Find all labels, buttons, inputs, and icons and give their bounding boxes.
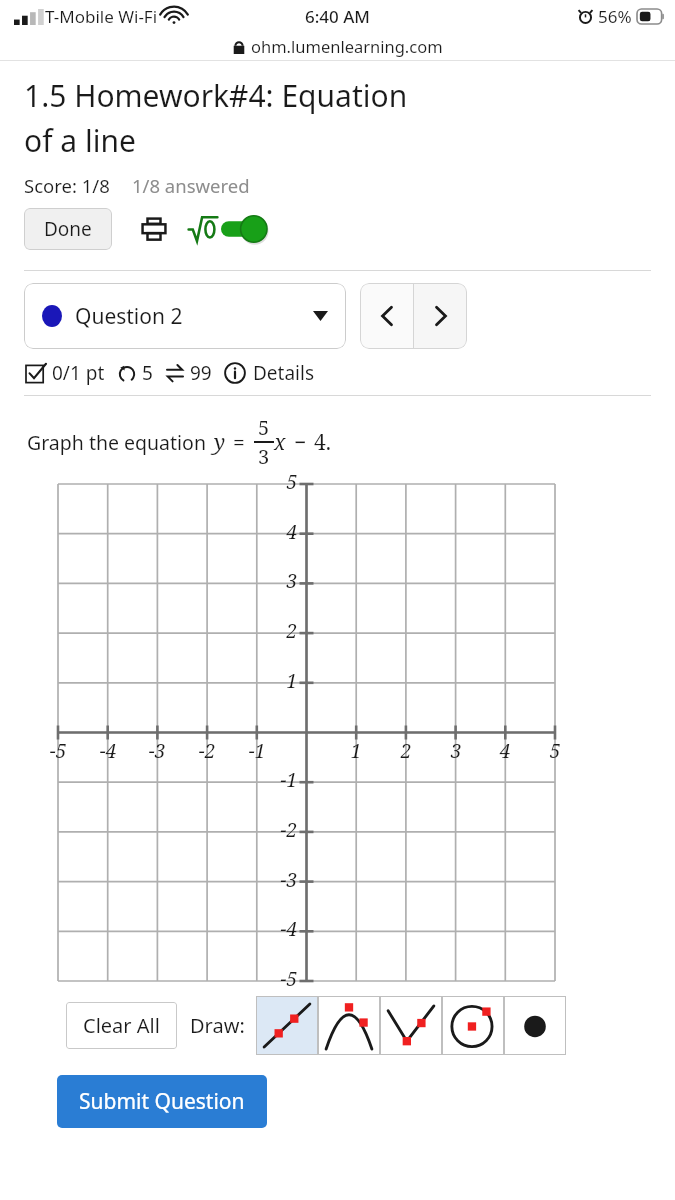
- staticText: Submit Question: [79, 1087, 245, 1116]
- staticText: -4: [88, 738, 128, 764]
- staticText: 1/8 answered: [132, 173, 250, 198]
- button[interactable]: Drawing tool: [256, 996, 318, 1055]
- staticText: =: [233, 428, 245, 457]
- button[interactable]: Details: [224, 360, 315, 386]
- button[interactable]: Print: [134, 209, 174, 249]
- button[interactable]: Previous question: [360, 283, 413, 349]
- staticText: 3: [261, 568, 297, 594]
- staticText: -2: [187, 738, 227, 764]
- button[interactable]: Submit Question: [57, 1075, 267, 1128]
- staticText: 5: [142, 360, 153, 386]
- staticText: T-Mobile Wi-Fi: [45, 5, 158, 28]
- staticText: 2: [386, 738, 426, 764]
- staticText: ohm.lumenlearning.com: [251, 35, 443, 57]
- staticText: Done: [44, 216, 92, 242]
- button[interactable]: Drawing tool: [504, 996, 566, 1055]
- button[interactable]: Math input toggle: [188, 214, 267, 244]
- button[interactable]: Next question: [414, 283, 467, 349]
- button[interactable]: Drawing tool: [442, 996, 504, 1055]
- staticText: 1: [336, 738, 376, 764]
- staticText: -2: [261, 817, 297, 843]
- staticText: -5: [38, 738, 78, 764]
- staticText: -1: [237, 738, 277, 764]
- button[interactable]: Drawing tool: [318, 996, 380, 1055]
- staticText: Score: 1/8: [24, 173, 110, 198]
- staticText: Clear All: [83, 1012, 160, 1039]
- button[interactable]: Question 2: [24, 283, 346, 349]
- button[interactable]: Clear All: [66, 1002, 177, 1049]
- staticText: Draw:: [190, 1012, 245, 1039]
- button[interactable]: Drawing tool: [380, 996, 442, 1055]
- staticText: Details: [253, 360, 315, 386]
- staticText: 4: [485, 738, 525, 764]
- staticText: 2: [261, 618, 297, 644]
- staticText: −: [294, 428, 307, 457]
- staticText: 99: [190, 360, 212, 386]
- staticText: -1: [261, 767, 297, 793]
- staticText: 5: [261, 469, 297, 495]
- staticText: 6:40 AM: [305, 5, 370, 28]
- staticText: Question 2: [75, 302, 183, 331]
- staticText: x: [274, 428, 286, 457]
- staticText: 5: [535, 738, 575, 764]
- staticText: -5: [261, 966, 297, 992]
- staticText: 4: [261, 519, 297, 545]
- staticText: -4: [261, 916, 297, 942]
- staticText: -3: [137, 738, 177, 764]
- staticText: -3: [261, 867, 297, 893]
- staticText: 56%: [598, 5, 632, 28]
- staticText: 0/1 pt: [52, 360, 105, 386]
- staticText: 3: [436, 738, 476, 764]
- staticText: 3: [258, 443, 270, 470]
- button[interactable]: Done: [24, 208, 112, 250]
- staticText: 1: [261, 668, 297, 694]
- staticText: Graph the equation: [27, 429, 206, 456]
- staticText: 5: [258, 414, 270, 441]
- staticText: of a line: [24, 120, 136, 161]
- staticText: y: [214, 428, 226, 457]
- staticText: 1.5 Homework#4: Equation: [24, 75, 408, 116]
- staticText: 4.: [314, 428, 331, 457]
